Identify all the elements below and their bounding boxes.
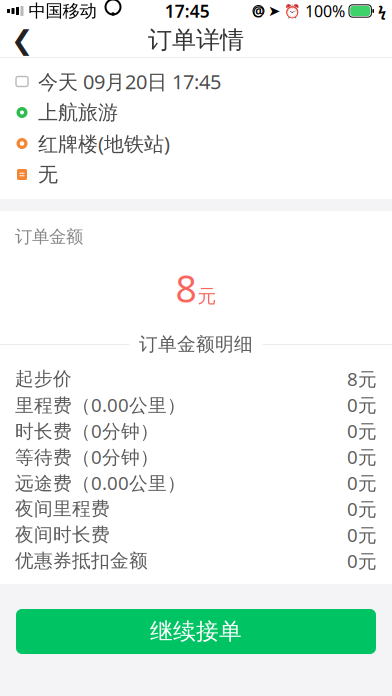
staticText: 中国移动 xyxy=(28,0,96,22)
staticText: 8元 xyxy=(347,366,377,391)
button[interactable]: 返回 xyxy=(0,22,44,58)
staticText: 今天 09月20日 17:45 xyxy=(38,68,221,95)
staticText: 100% xyxy=(305,0,345,22)
staticText: 0元 xyxy=(347,418,377,443)
staticText: ⏰ xyxy=(284,3,301,19)
staticText: 里程费（0.00公里） xyxy=(15,392,186,417)
staticText: ❮ xyxy=(11,25,33,55)
staticText: 远途费（0.00公里） xyxy=(15,470,186,495)
staticText: @ xyxy=(252,2,264,20)
staticText: 0元 xyxy=(347,496,377,521)
staticText: 夜间里程费 xyxy=(15,497,110,520)
staticText: 时长费（0分钟） xyxy=(15,418,159,443)
staticText: 上航旅游 xyxy=(38,100,118,125)
staticText: 夜间时长费 xyxy=(15,523,110,546)
staticText: 继续接单 xyxy=(150,618,242,645)
staticText: 订单金额 xyxy=(15,226,83,247)
staticText: 8 xyxy=(175,263,196,313)
staticText: 等待费（0分钟） xyxy=(15,444,159,469)
staticText: 0元 xyxy=(347,444,377,469)
staticText: 无 xyxy=(38,162,58,187)
staticText: 0元 xyxy=(347,392,377,417)
staticText: 订单金额明细 xyxy=(139,333,253,356)
staticText: 0元 xyxy=(347,470,377,495)
staticText: 0元 xyxy=(347,548,377,573)
staticText: ϟ xyxy=(378,1,386,21)
button[interactable]: 继续接单 xyxy=(16,609,376,654)
staticText: 0元 xyxy=(347,522,377,547)
staticText: 17:45 xyxy=(165,0,210,22)
staticText: 订单详情 xyxy=(148,25,244,55)
staticText: 红牌楼(地铁站) xyxy=(38,130,170,157)
staticText: 起步价 xyxy=(15,367,72,390)
staticText: 元 xyxy=(197,285,216,308)
staticText: ➤ xyxy=(268,3,280,19)
staticText: 优惠券抵扣金额 xyxy=(15,549,148,572)
